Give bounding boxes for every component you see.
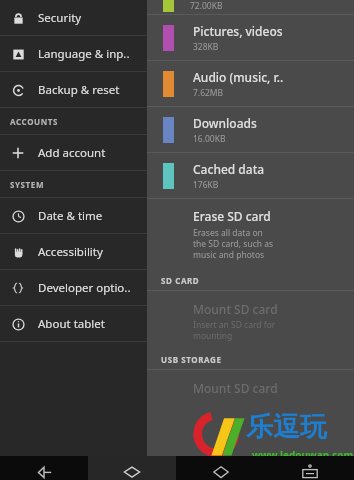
- staticText: 7.62MB: [193, 87, 224, 99]
- button[interactable]: Backup & reset: [0, 72, 147, 107]
- staticText: Language & inp..: [38, 46, 130, 62]
- button[interactable]: About tablet: [0, 306, 147, 341]
- button[interactable]: Pictures, videos: [147, 15, 354, 60]
- staticText: Date & time: [38, 208, 103, 224]
- staticText: Mount SD card: [193, 380, 278, 396]
- staticText: 乐逗玩: [246, 410, 327, 444]
- staticText: Audio (music, r..: [193, 69, 284, 85]
- staticText: 328KB: [193, 41, 219, 53]
- button[interactable]: Accessibility: [0, 234, 147, 269]
- button[interactable]: Language & inp..: [0, 36, 147, 71]
- staticText: USB STORAGE: [161, 354, 222, 365]
- staticText: About tablet: [38, 316, 105, 332]
- staticText: Cached data: [193, 161, 265, 177]
- staticText: Downloads: [193, 115, 257, 131]
- button[interactable]: Back: [0, 456, 88, 480]
- staticText: www.ledouwan.com: [252, 448, 354, 462]
- button[interactable]: Add account: [0, 135, 147, 170]
- staticText: Accessibility: [38, 244, 103, 260]
- staticText: Backup & reset: [38, 82, 120, 98]
- staticText: Security: [38, 10, 82, 26]
- button[interactable]: Developer optio..: [0, 270, 147, 305]
- button[interactable]: Date & time: [0, 198, 147, 233]
- staticText: Erase SD card: [193, 208, 271, 224]
- staticText: 176KB: [193, 179, 219, 191]
- button[interactable]: Cached data: [147, 153, 354, 198]
- staticText: 16.00KB: [193, 133, 226, 145]
- staticText: SD CARD: [161, 275, 200, 286]
- staticText: 72.00KB: [190, 0, 223, 12]
- button[interactable]: 72.00KB: [147, 0, 354, 14]
- staticText: Pictures, videos: [193, 23, 283, 39]
- button[interactable]: Recents: [176, 456, 265, 480]
- button[interactable]: Keyboard: [265, 456, 354, 480]
- staticText: Insert an SD card for mounting: [193, 319, 276, 341]
- staticText: Add account: [38, 145, 106, 161]
- button[interactable]: Audio (music, r..: [147, 61, 354, 106]
- staticText: Developer optio..: [38, 280, 131, 296]
- staticText: Erases all data on the SD card, such as …: [193, 227, 274, 260]
- button[interactable]: Security: [0, 0, 147, 35]
- button[interactable]: Home: [88, 456, 176, 480]
- button[interactable]: Erase SD card: [147, 199, 354, 270]
- staticText: Mount SD card: [193, 301, 278, 317]
- button[interactable]: Downloads: [147, 107, 354, 152]
- staticText: ACCOUNTS: [10, 116, 59, 127]
- staticText: SYSTEM: [10, 179, 45, 190]
